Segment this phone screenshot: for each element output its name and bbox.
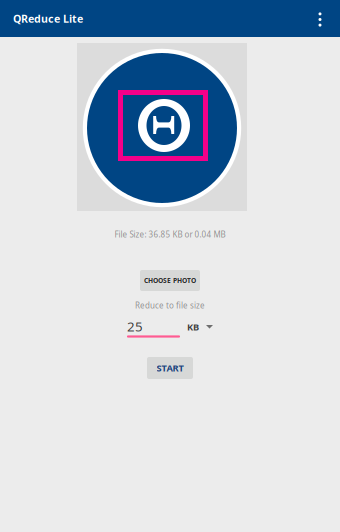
staticText: QReduce Lite xyxy=(13,11,83,26)
staticText: CHOOSE PHOTO xyxy=(144,276,196,285)
staticText: File Size: 36.85 KB or 0.04 MB xyxy=(114,229,225,240)
staticText: START xyxy=(156,362,183,374)
button[interactable]: KB xyxy=(187,318,213,335)
button[interactable]: More options xyxy=(305,0,335,37)
staticText: Reduce to file size xyxy=(135,300,205,311)
staticText: KB xyxy=(187,321,199,333)
button[interactable]: START xyxy=(147,357,193,379)
staticText: 25 xyxy=(127,317,143,335)
button[interactable]: CHOOSE PHOTO xyxy=(140,270,200,291)
